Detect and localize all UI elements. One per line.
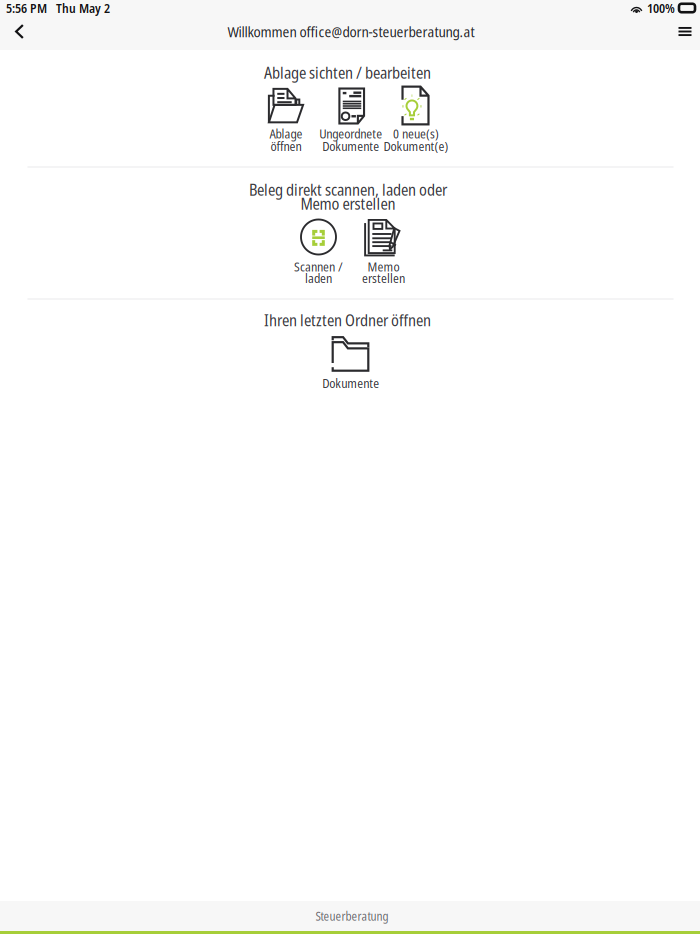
staticText: Dokumente <box>322 137 379 155</box>
staticText: Dokumente <box>322 374 379 392</box>
staticText: Steuerberatung <box>315 908 388 924</box>
staticText: Beleg direkt scannen, laden oder <box>249 179 447 200</box>
staticText: Memo <box>367 258 399 275</box>
staticText: Dokument(e) <box>383 137 448 155</box>
staticText: Ablage sichten / bearbeiten <box>264 62 431 83</box>
button[interactable]: Back <box>0 13 39 49</box>
staticText: Scannen / <box>294 258 343 275</box>
staticText: erstellen <box>362 269 405 287</box>
button[interactable]: Memo <box>350 217 416 285</box>
staticText: Willkommen office@dorn-steuerberatung.at <box>227 21 474 41</box>
button[interactable]: Ablage <box>253 85 319 153</box>
button[interactable]: Ungeordnete <box>318 85 384 153</box>
staticText: 5:56 PM <box>6 0 47 17</box>
button[interactable]: Menu <box>665 13 700 49</box>
staticText: 0 neue(s) <box>393 125 439 142</box>
staticText: Ablage <box>269 125 302 142</box>
button[interactable]: 0 neue(s) <box>383 85 449 153</box>
staticText: öffnen <box>270 137 301 155</box>
staticText: Thu May 2 <box>56 0 110 17</box>
button[interactable]: Scannen / <box>285 217 351 285</box>
staticText: Ihren letzten Ordner öffnen <box>264 309 431 331</box>
button[interactable]: Dokumente <box>315 334 387 394</box>
staticText: 100% <box>647 0 675 17</box>
staticText: Ungeordnete <box>319 125 382 142</box>
staticText: Memo erstellen <box>300 193 395 214</box>
staticText: laden <box>305 269 332 287</box>
